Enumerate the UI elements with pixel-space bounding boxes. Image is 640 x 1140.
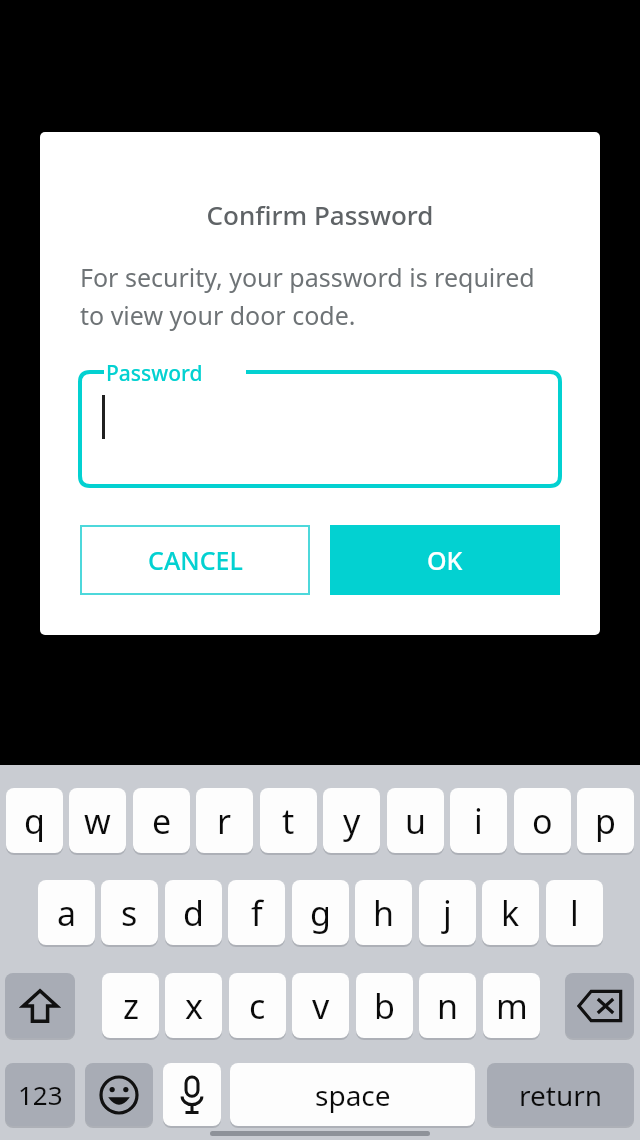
button[interactable]: x bbox=[165, 973, 222, 1038]
staticText: y bbox=[343, 798, 361, 844]
button[interactable]: return bbox=[487, 1063, 634, 1126]
button[interactable]: r bbox=[196, 788, 253, 853]
staticText: v bbox=[312, 983, 330, 1029]
button[interactable]: OK bbox=[330, 525, 560, 595]
button[interactable]: f bbox=[228, 880, 285, 945]
button[interactable]: t bbox=[260, 788, 317, 853]
staticText: w bbox=[84, 798, 111, 844]
staticText: Password bbox=[106, 359, 203, 388]
button[interactable]: c bbox=[229, 973, 286, 1038]
staticText: e bbox=[152, 798, 172, 844]
button[interactable]: a bbox=[38, 880, 95, 945]
button[interactable]: d bbox=[165, 880, 222, 945]
staticText: b bbox=[374, 983, 395, 1029]
staticText: r bbox=[217, 798, 232, 844]
button[interactable]: p bbox=[577, 788, 634, 853]
staticText: c bbox=[249, 983, 266, 1029]
button[interactable]: Emoji bbox=[85, 1063, 153, 1126]
staticText: h bbox=[373, 890, 395, 936]
staticText: q bbox=[24, 798, 45, 844]
staticText: n bbox=[437, 983, 459, 1029]
button[interactable]: u bbox=[387, 788, 444, 853]
staticText: k bbox=[501, 890, 520, 936]
button[interactable]: h bbox=[355, 880, 412, 945]
button[interactable]: g bbox=[292, 880, 349, 945]
staticText: OK bbox=[427, 543, 463, 577]
button[interactable]: z bbox=[102, 973, 159, 1038]
staticText: For security, your password is required … bbox=[80, 260, 560, 332]
button[interactable]: o bbox=[514, 788, 571, 853]
button[interactable]: space bbox=[230, 1063, 475, 1126]
button[interactable]: b bbox=[356, 973, 413, 1038]
staticText: u bbox=[405, 798, 427, 844]
button[interactable]: n bbox=[419, 973, 476, 1038]
staticText: p bbox=[595, 798, 616, 844]
staticText: z bbox=[123, 983, 139, 1029]
staticText: m bbox=[496, 983, 528, 1029]
staticText: j bbox=[443, 890, 452, 936]
button[interactable]: q bbox=[6, 788, 63, 853]
staticText: space bbox=[315, 1076, 391, 1114]
button[interactable]: e bbox=[133, 788, 190, 853]
button[interactable]: Shift bbox=[5, 973, 75, 1038]
button[interactable]: Voice input bbox=[163, 1063, 221, 1126]
button[interactable]: s bbox=[101, 880, 158, 945]
button[interactable]: y bbox=[323, 788, 380, 853]
button[interactable]: CANCEL bbox=[80, 525, 310, 595]
staticText: i bbox=[474, 798, 483, 844]
staticText: s bbox=[121, 890, 138, 936]
staticText: 123 bbox=[18, 1077, 63, 1112]
staticText: t bbox=[282, 798, 295, 844]
button[interactable]: Delete bbox=[565, 973, 634, 1038]
button[interactable]: l bbox=[546, 880, 603, 945]
button[interactable]: k bbox=[482, 880, 539, 945]
staticText: f bbox=[251, 890, 263, 936]
staticText: CANCEL bbox=[148, 543, 243, 577]
staticText: x bbox=[185, 983, 203, 1029]
button[interactable]: j bbox=[419, 880, 476, 945]
staticText: d bbox=[183, 890, 204, 936]
button[interactable]: i bbox=[450, 788, 507, 853]
staticText: l bbox=[570, 890, 579, 936]
button[interactable]: v bbox=[292, 973, 349, 1038]
staticText: Confirm Password bbox=[40, 197, 600, 232]
button[interactable]: Password bbox=[80, 361, 560, 486]
staticText: g bbox=[310, 890, 331, 936]
button[interactable]: w bbox=[69, 788, 126, 853]
button[interactable]: 123 bbox=[5, 1063, 75, 1126]
button[interactable]: m bbox=[483, 973, 540, 1038]
staticText: a bbox=[57, 890, 77, 936]
staticText: return bbox=[519, 1076, 603, 1114]
staticText: o bbox=[532, 798, 553, 844]
